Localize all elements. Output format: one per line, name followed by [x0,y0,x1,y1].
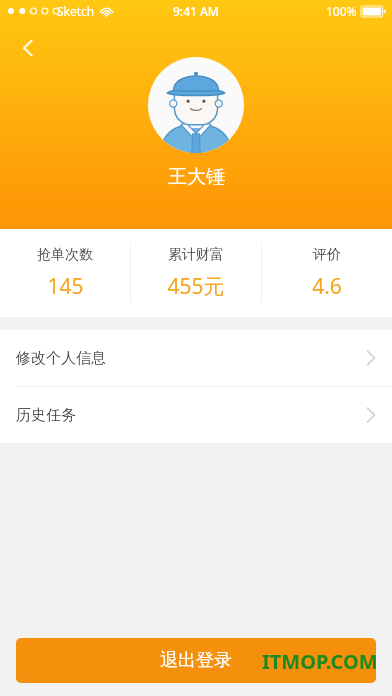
staticText: 4.6 [312,272,342,301]
staticText: 累计财富 [168,246,224,264]
staticText: 抢单次数 [37,246,93,264]
staticText: 历史任务 [16,406,76,425]
staticText: 455元 [167,272,225,301]
staticText: 退出登录 [160,649,232,672]
staticText: 100% [326,3,357,19]
staticText: 9:41 AM [173,3,219,19]
staticText: Sketch [57,3,95,19]
button[interactable]: 退出登录 [16,638,376,683]
staticText: 评价 [313,246,341,264]
staticText: ITMOP.COM [262,648,378,675]
button[interactable]: Back [6,26,50,70]
staticText: 修改个人信息 [16,349,106,368]
button[interactable]: 历史任务 [0,387,392,443]
staticText: 145 [47,272,84,301]
button[interactable]: 修改个人信息 [0,330,392,386]
staticText: 王大锤 [168,165,225,189]
